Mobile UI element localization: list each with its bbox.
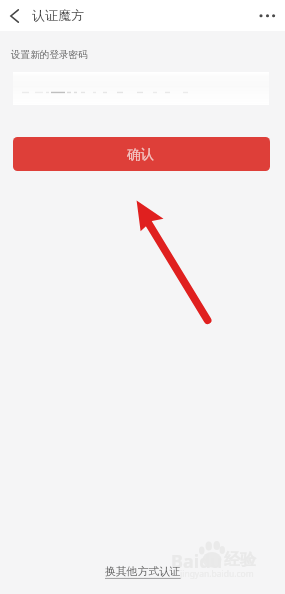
button[interactable]: 换其他方式认证: [105, 565, 181, 579]
staticText: Baidu: [171, 549, 223, 574]
button[interactable]: 确认: [13, 137, 270, 171]
staticText: jingyan.baidu.com: [180, 568, 254, 580]
staticText: 认证魔方: [32, 7, 84, 23]
staticText: 设置新的登录密码: [11, 49, 88, 61]
button[interactable]: [13, 72, 269, 105]
staticText: 换其他方式认证: [105, 565, 181, 579]
staticText: 经验: [224, 550, 256, 570]
staticText: 确认: [127, 146, 154, 163]
button[interactable]: More options: [253, 4, 281, 27]
button[interactable]: Back: [2, 3, 27, 28]
